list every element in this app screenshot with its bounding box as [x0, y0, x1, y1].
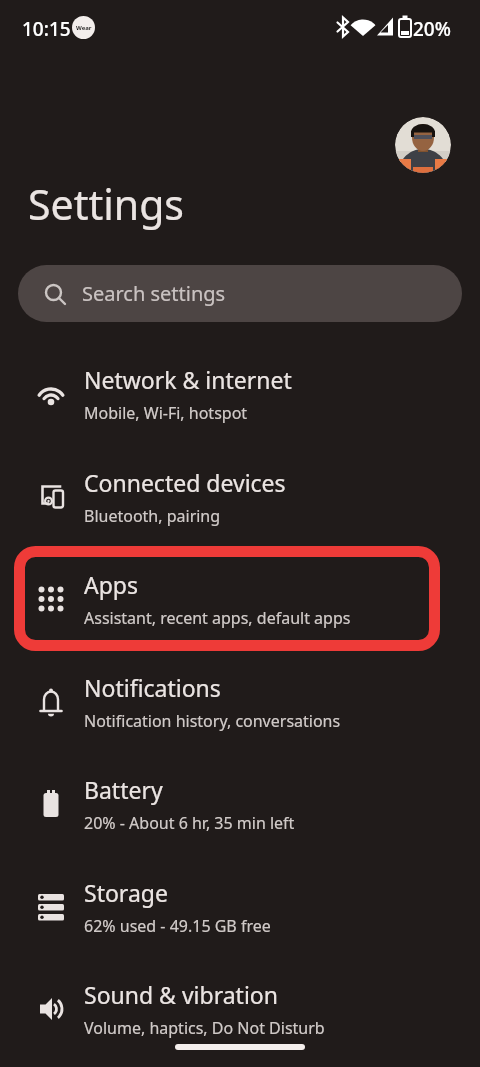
staticText: Search settings	[82, 280, 226, 307]
staticText: Assistant, recent apps, default apps	[84, 607, 351, 629]
staticText: Notification history, conversations	[84, 710, 341, 732]
button[interactable]: Network & internet	[0, 343, 480, 445]
staticText: Battery	[84, 774, 163, 805]
button[interactable]: Apps	[0, 548, 480, 650]
button[interactable]: Battery	[0, 753, 480, 855]
button[interactable]: Notifications	[0, 651, 480, 753]
button[interactable]: Search settings	[18, 265, 462, 322]
staticText: Settings	[28, 176, 185, 232]
staticText: Wear	[76, 24, 92, 32]
staticText: Storage	[84, 877, 168, 908]
staticText: 10:15	[22, 16, 71, 42]
button[interactable]: Connected devices	[0, 446, 480, 548]
staticText: Connected devices	[84, 467, 286, 498]
button[interactable]: Sound & vibration	[0, 958, 480, 1060]
button[interactable]	[395, 117, 451, 173]
staticText: Notifications	[84, 672, 221, 703]
staticText: Sound & vibration	[84, 979, 278, 1010]
staticText: Volume, haptics, Do Not Disturb	[84, 1017, 325, 1039]
staticText: Bluetooth, pairing	[84, 505, 221, 527]
staticText: 62% used - 49.15 GB free	[84, 915, 271, 937]
staticText: Mobile, Wi-Fi, hotspot	[84, 402, 248, 424]
staticText: 20%	[413, 16, 451, 42]
button[interactable]: Storage	[0, 856, 480, 958]
staticText: 20% - About 6 hr, 35 min left	[84, 812, 295, 834]
staticText: Apps	[84, 569, 139, 600]
staticText: Network & internet	[84, 364, 292, 395]
